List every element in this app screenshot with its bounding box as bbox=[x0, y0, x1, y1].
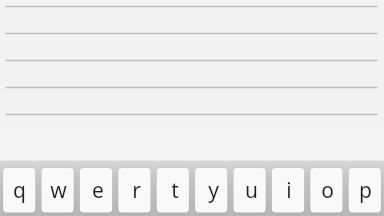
button[interactable]: t bbox=[159, 168, 191, 212]
staticText: r bbox=[132, 176, 141, 205]
button[interactable]: e bbox=[81, 168, 114, 212]
button[interactable]: r bbox=[120, 168, 153, 212]
button[interactable]: p bbox=[349, 168, 381, 212]
button[interactable]: o bbox=[311, 168, 343, 212]
button[interactable]: u bbox=[235, 168, 267, 212]
staticText: w bbox=[50, 176, 67, 205]
button[interactable]: q bbox=[3, 168, 36, 212]
button[interactable]: y bbox=[197, 168, 229, 212]
staticText: e bbox=[92, 176, 104, 205]
staticText: q bbox=[13, 176, 26, 205]
button[interactable]: w bbox=[42, 168, 75, 212]
staticText: i bbox=[286, 176, 292, 205]
button[interactable]: i bbox=[273, 168, 305, 212]
staticText: t bbox=[171, 176, 179, 205]
staticText: u bbox=[245, 176, 258, 205]
button[interactable]: Note text bbox=[0, 0, 384, 128]
staticText: p bbox=[359, 176, 372, 205]
staticText: o bbox=[321, 176, 334, 205]
staticText: y bbox=[208, 176, 219, 205]
